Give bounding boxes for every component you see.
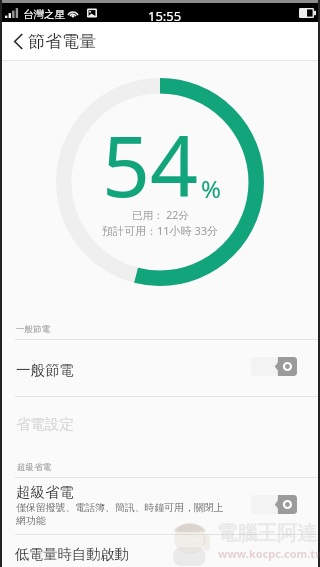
staticText: 一般節電 (16, 324, 50, 335)
staticText: 省電設定 (16, 415, 74, 433)
button[interactable]: Toggle switch (251, 495, 297, 514)
staticText: 超級省電 (16, 483, 74, 501)
button[interactable]: 低電量時自動啟動 (2, 534, 318, 567)
staticText: 15:55 (148, 7, 182, 25)
staticText: 電腦王阿達 (217, 521, 317, 546)
staticText: 僅保留撥號、電話簿、簡訊、時鐘可用，關閉上網功能 (16, 501, 225, 527)
staticText: 預計可用：11小時 33分 (102, 223, 219, 238)
button[interactable] (2, 477, 318, 534)
button[interactable]: Toggle switch (251, 357, 297, 376)
staticText: 一般節電 (16, 361, 74, 379)
staticText: 低電量時自動啟動 (15, 545, 129, 563)
staticText: 台灣之星 (23, 8, 65, 21)
button[interactable]: 省電設定 (2, 396, 318, 446)
button[interactable]: Back (2, 22, 34, 61)
staticText: 超級省電 (17, 462, 51, 473)
staticText: 節省電量 (28, 31, 96, 52)
staticText: www.kocpc.com.tw (218, 546, 320, 561)
staticText: 已用： 22分 (132, 208, 189, 222)
button[interactable] (2, 339, 318, 396)
staticText: 54 (102, 107, 199, 221)
staticText: % (201, 172, 221, 205)
